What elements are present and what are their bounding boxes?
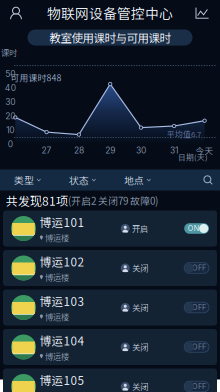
staticText: 10 <box>6 125 14 135</box>
staticText: 共发现81项 <box>6 192 68 209</box>
staticText: 关闭 <box>132 380 148 392</box>
staticText: 地点 <box>124 173 144 187</box>
staticText: 40 <box>5 83 16 93</box>
button[interactable]: 搜索 <box>198 169 218 190</box>
staticText: 今天 <box>196 144 214 157</box>
staticText: 30 <box>5 97 15 107</box>
button[interactable]: 状态 <box>55 169 110 190</box>
staticText: 29 <box>105 145 115 156</box>
staticText: OFF <box>192 303 206 312</box>
button[interactable]: 账户 <box>6 3 26 23</box>
staticText: 关闭 <box>132 262 148 274</box>
staticText: 博运楼 <box>45 311 69 323</box>
staticText: 博运103 <box>39 292 84 309</box>
staticText: 30 <box>136 145 146 156</box>
staticText: 20 <box>5 111 15 121</box>
staticText: 博运102 <box>39 253 84 270</box>
staticText: 物联网设备管控中心 <box>47 3 173 23</box>
staticText: 开启 <box>132 222 148 234</box>
staticText: 博运楼 <box>45 232 69 244</box>
staticText: 课时 <box>1 46 17 58</box>
staticText: OFF <box>192 382 206 391</box>
staticText: 博运101 <box>39 213 84 230</box>
staticText: 31 <box>170 145 178 156</box>
staticText: 28 <box>74 145 84 156</box>
button[interactable]: 教室使用课时与可用课时 <box>27 29 192 45</box>
button[interactable]: 地点 <box>110 169 165 190</box>
button[interactable]: 博运103 <box>0 289 220 325</box>
button[interactable]: 数据统计 <box>192 3 212 23</box>
staticText: 关闭 <box>132 301 148 313</box>
staticText: 可用课时848 <box>10 71 61 84</box>
staticText: 博运楼 <box>45 350 69 362</box>
staticText: 博运楼 <box>45 271 69 283</box>
staticText: 教室使用课时与可用课时 <box>49 29 170 46</box>
staticText: 日期(天) <box>178 151 208 163</box>
staticText: 27 <box>42 145 52 156</box>
staticText: 类型 <box>14 173 34 187</box>
staticText: OFF <box>192 343 206 351</box>
staticText: 博运104 <box>39 332 84 349</box>
button[interactable]: 博运104 <box>0 329 220 365</box>
button[interactable]: 博运101 <box>0 210 220 246</box>
staticText: 状态 <box>69 173 89 187</box>
staticText: 50 <box>5 69 15 79</box>
staticText: ON <box>188 224 199 233</box>
staticText: OFF <box>192 264 206 272</box>
staticText: 博运105 <box>39 371 84 388</box>
staticText: 关闭 <box>132 341 148 353</box>
staticText: 0 <box>8 139 13 149</box>
button[interactable]: 博运105 <box>0 368 220 392</box>
button[interactable]: 博运102 <box>0 250 220 286</box>
button[interactable]: 类型 <box>0 169 55 190</box>
staticText: 平均值6.7 <box>167 128 201 140</box>
staticText: (开启2 关闭79 故障0) <box>68 193 158 208</box>
